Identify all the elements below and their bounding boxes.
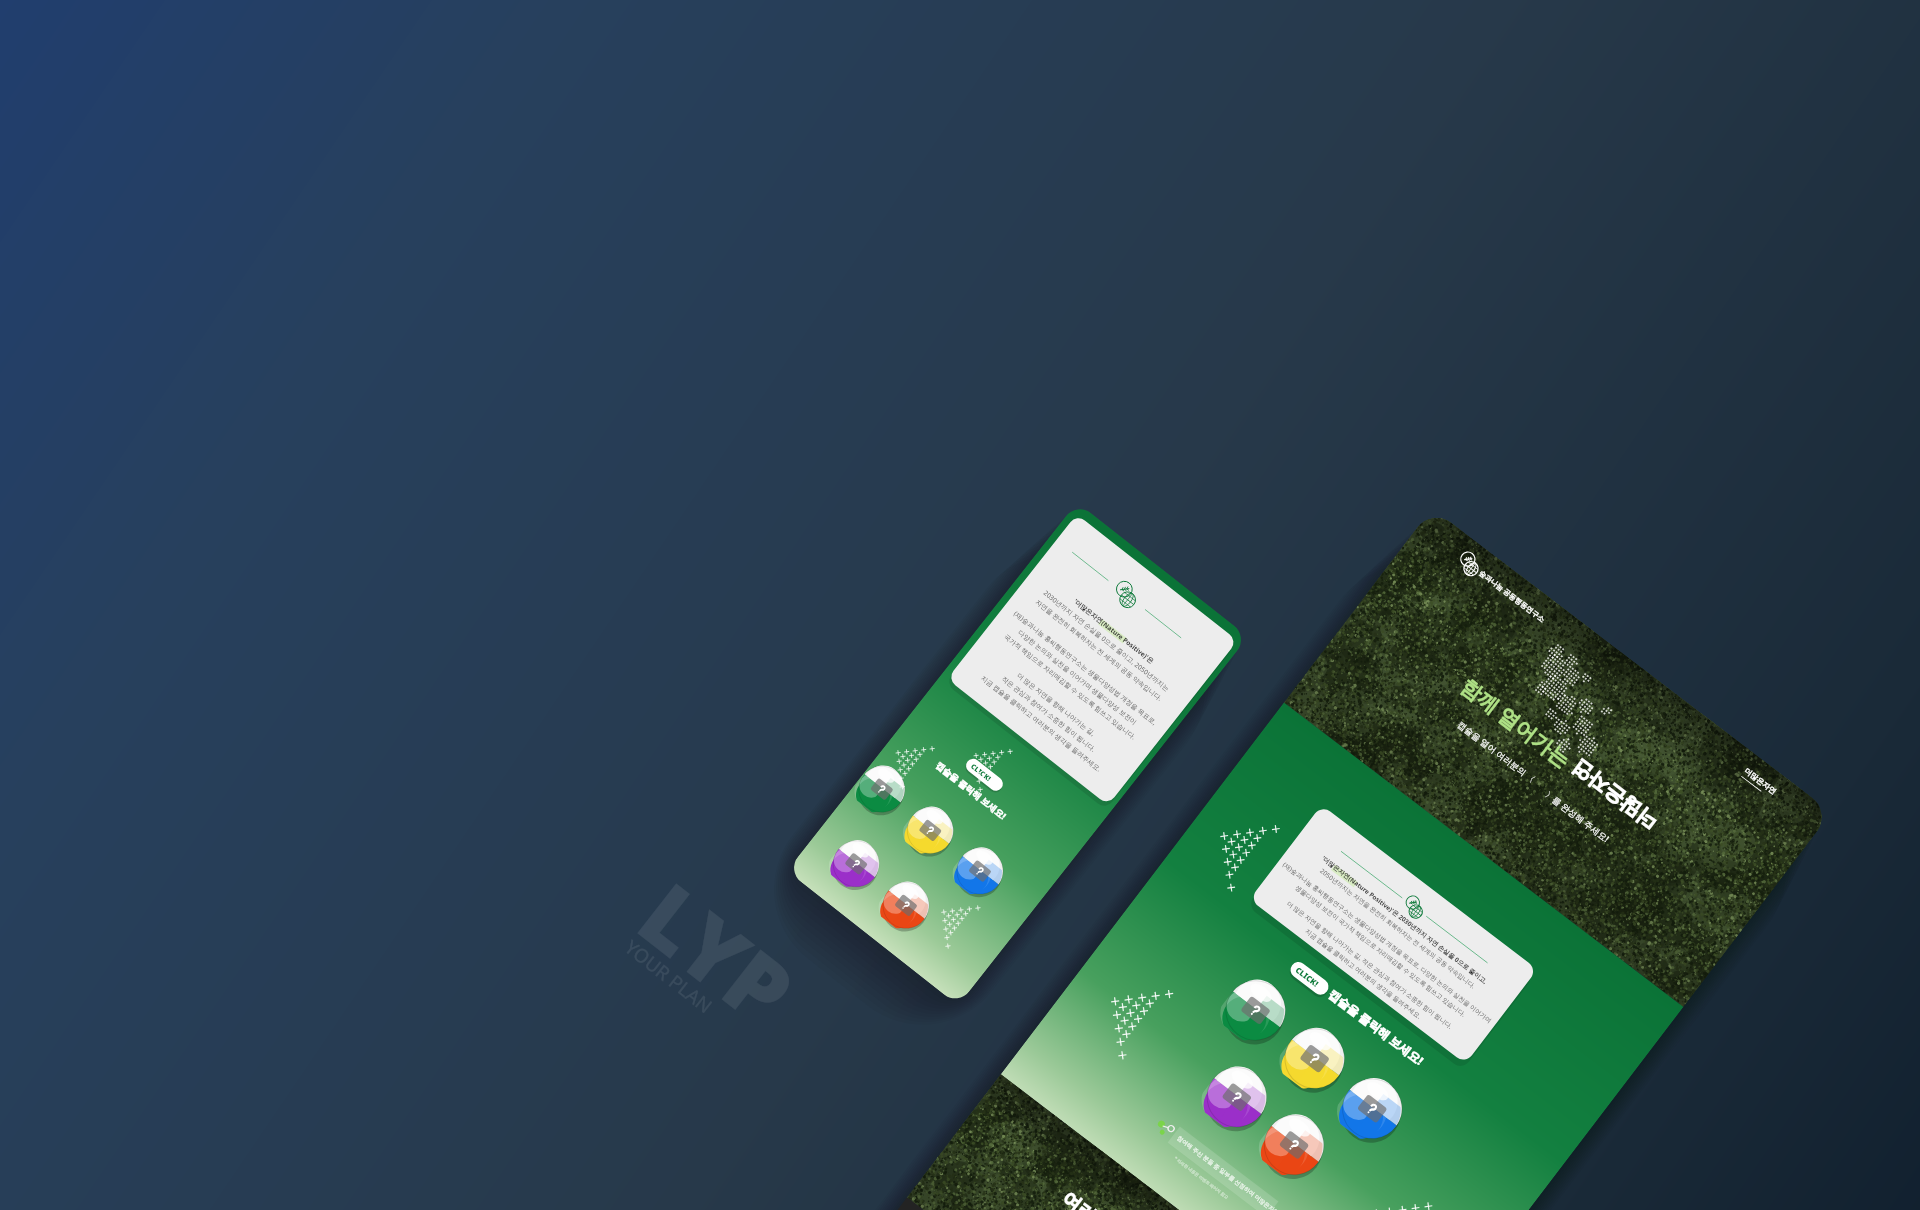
button[interactable]: Phone mockup presentation <box>0 0 1920 1210</box>
